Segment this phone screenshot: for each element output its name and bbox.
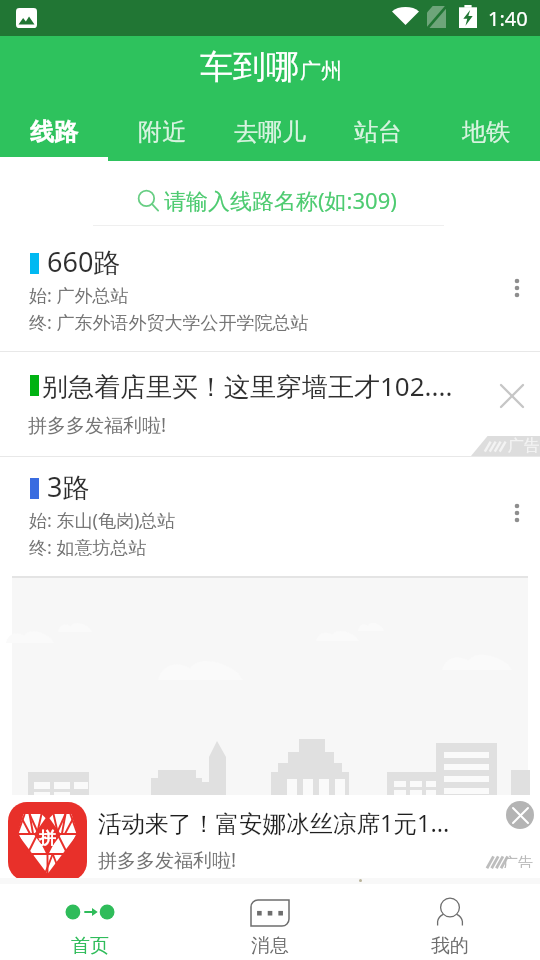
staticText: 拼多多发福利啦! [98, 847, 237, 873]
button[interactable]: 消息 [180, 884, 360, 960]
button[interactable]: 线路 [0, 100, 108, 161]
button[interactable]: Close advertisement [494, 378, 530, 414]
staticText: 站台 [354, 117, 402, 147]
staticText: 广告 [503, 854, 533, 868]
staticText: 终: 广东外语外贸大学公开学院总站 [29, 310, 309, 335]
button[interactable]: More options [500, 271, 534, 305]
staticText: 附近 [138, 117, 186, 147]
staticText: 我的 [431, 934, 469, 958]
staticText: 线路 [30, 117, 78, 147]
staticText: 别急着店里买！这里穿墙王才102.... [42, 368, 453, 404]
staticText: 活动来了！富安娜冰丝凉席1元1... [98, 807, 450, 839]
button[interactable]: 附近 [108, 100, 216, 161]
other: Screenshot [16, 8, 37, 28]
button[interactable]: 站台 [324, 100, 432, 161]
staticText: 始: 广外总站 [29, 283, 129, 308]
staticText: 始: 东山(龟岗)总站 [29, 508, 176, 533]
staticText: 终: 如意坊总站 [29, 535, 147, 560]
staticText: 1:40 [488, 5, 528, 32]
staticText: 广告 [508, 436, 540, 456]
staticText: 3路 [47, 468, 90, 505]
staticText: 地铁 [462, 117, 510, 147]
staticText: 广州 [300, 58, 342, 84]
button[interactable]: Close advertisement [506, 801, 534, 829]
button[interactable]: 首页 [0, 884, 180, 960]
button[interactable]: 地铁 [432, 100, 540, 161]
staticText: 车到哪 [200, 46, 299, 88]
button[interactable]: 请输入线路名称(如:309) [0, 161, 540, 226]
staticText: 首页 [71, 934, 109, 958]
staticText: 请输入线路名称(如:309) [164, 185, 397, 215]
button[interactable]: 别急着店里买！这里穿墙王才102.... [0, 352, 540, 456]
button[interactable]: More options [500, 496, 534, 530]
staticText: 拼多多发福利啦! [28, 412, 167, 438]
button[interactable]: 去哪儿 [216, 100, 324, 161]
staticText: 消息 [251, 934, 289, 958]
staticText: 去哪儿 [234, 117, 306, 147]
button[interactable]: 我的 [360, 884, 540, 960]
button[interactable]: 拼 [0, 795, 540, 878]
staticText: 拼 [39, 828, 56, 849]
button[interactable]: 660路 [0, 226, 540, 351]
staticText: 660路 [47, 243, 121, 280]
button[interactable]: 3路 [0, 457, 540, 570]
